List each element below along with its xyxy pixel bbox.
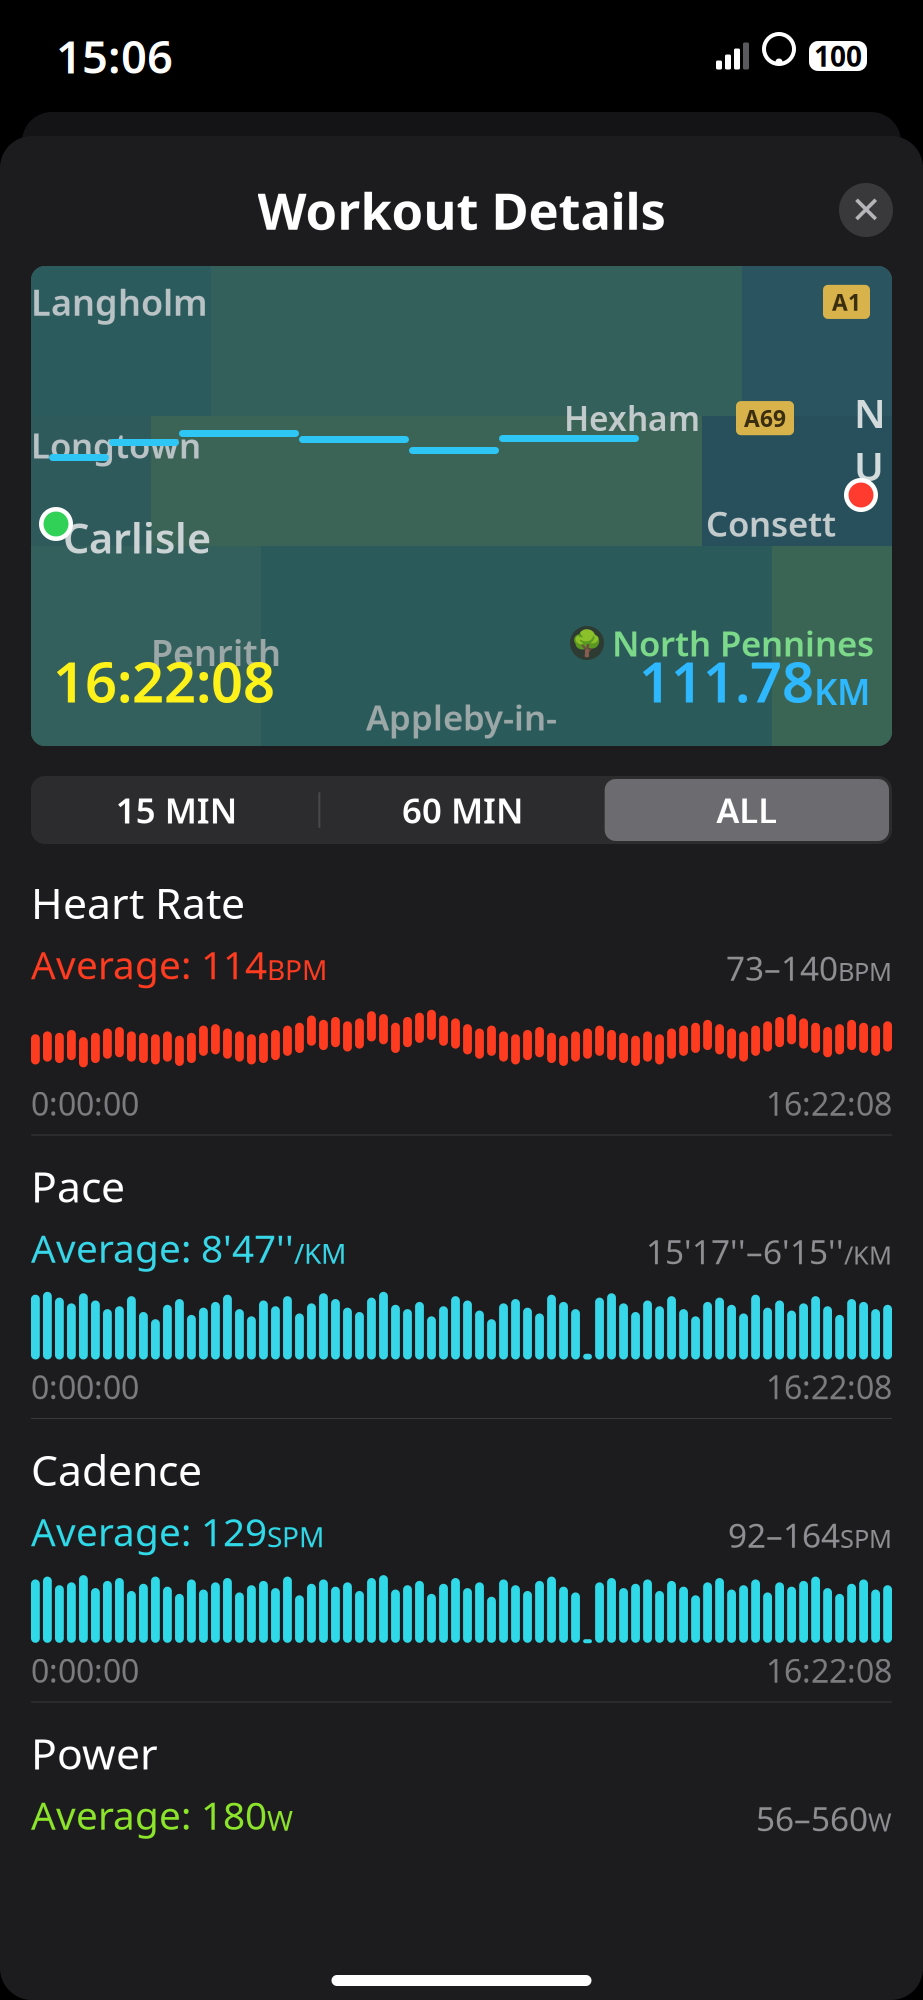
- staticText: BPM: [838, 954, 892, 988]
- staticText: /KM: [844, 1238, 892, 1271]
- staticText: Average: 180: [31, 1789, 267, 1840]
- staticText: 15:06: [56, 26, 173, 86]
- staticText: A1: [832, 287, 861, 317]
- staticText: 15 MIN: [116, 787, 237, 833]
- staticText: Power: [31, 1724, 158, 1781]
- staticText: 56–560: [756, 1796, 868, 1841]
- staticText: 92–164: [728, 1513, 840, 1557]
- staticText: 🌳: [571, 628, 603, 657]
- staticText: 16:22:08: [766, 1365, 892, 1408]
- staticText: 0:00:00: [31, 1649, 139, 1691]
- staticText: Heart Rate: [31, 874, 245, 931]
- staticText: 111.78: [639, 644, 814, 718]
- staticText: Average: 129: [31, 1506, 267, 1557]
- staticText: 16:22:08: [53, 644, 275, 718]
- staticText: SPM: [267, 1518, 324, 1555]
- staticText: SPM: [840, 1521, 892, 1555]
- button[interactable]: 60 MIN: [320, 779, 605, 841]
- staticText: Longtown: [31, 422, 201, 468]
- staticText: 100: [814, 37, 862, 75]
- staticText: 0:00:00: [31, 1082, 139, 1124]
- button[interactable]: Close: [839, 183, 893, 237]
- button[interactable]: 15 MIN: [34, 779, 318, 841]
- staticText: /KM: [294, 1234, 346, 1271]
- staticText: 0:00:00: [31, 1365, 139, 1408]
- staticText: A69: [744, 403, 786, 433]
- staticText: W: [267, 1801, 293, 1838]
- staticText: 60 MIN: [402, 787, 523, 833]
- staticText: Cadence: [31, 1441, 202, 1498]
- staticText: Workout Details: [257, 176, 665, 244]
- staticText: W: [868, 1805, 892, 1838]
- staticText: 16:22:08: [766, 1649, 892, 1691]
- staticText: Average: 8'47'': [31, 1222, 294, 1273]
- staticText: Hexham: [564, 396, 700, 440]
- staticText: Carlisle: [63, 510, 211, 565]
- staticText: KM: [814, 667, 870, 715]
- staticText: 16:22:08: [766, 1082, 892, 1124]
- button[interactable]: ALL: [605, 779, 889, 841]
- staticText: BPM: [267, 951, 327, 988]
- staticText: N U: [854, 386, 886, 492]
- staticText: ✕: [850, 189, 881, 231]
- staticText: ALL: [716, 787, 777, 833]
- staticText: North Pennines: [612, 620, 874, 666]
- staticText: Pace: [31, 1157, 125, 1214]
- staticText: 15'17''–6'15'': [646, 1229, 844, 1273]
- staticText: 73–140: [726, 946, 838, 990]
- staticText: Consett: [706, 500, 836, 546]
- staticText: Langholm: [31, 278, 208, 326]
- staticText: Penrith: [151, 628, 281, 676]
- staticText: Appleby-in-: [366, 694, 557, 740]
- staticText: Average: 114: [31, 939, 267, 990]
